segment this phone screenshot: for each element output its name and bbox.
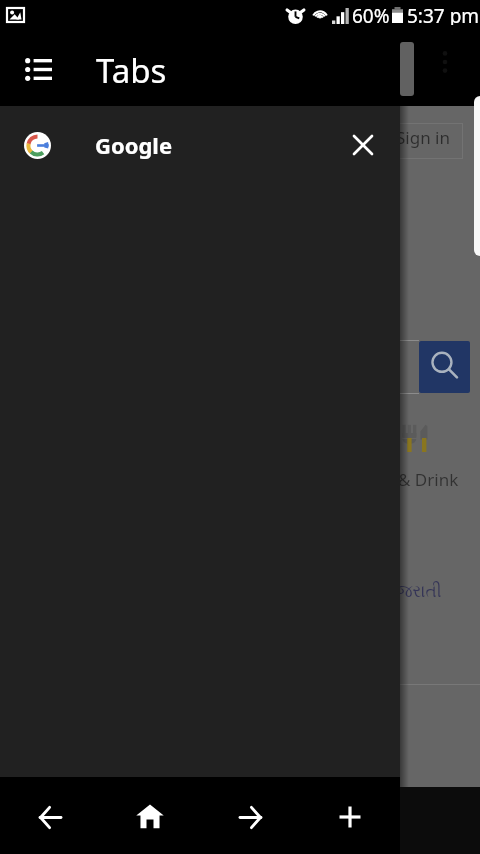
staticText: 5:37 pm (407, 3, 480, 25)
button[interactable]: Close tab (339, 121, 387, 169)
staticText: Tabs (96, 48, 167, 93)
staticText: Google (95, 130, 173, 160)
button[interactable]: Google (0, 106, 400, 184)
staticText: ગુજરાતી (384, 583, 442, 600)
button[interactable]: Tab list (13, 44, 63, 94)
staticText: 60% (352, 3, 390, 25)
button[interactable]: Back (16, 777, 84, 854)
staticText: Sign in (396, 126, 450, 149)
button[interactable] (396, 123, 463, 159)
button[interactable]: Search (419, 341, 470, 393)
staticText: & Drink (398, 468, 459, 491)
button[interactable]: Home (116, 777, 184, 854)
button[interactable]: Forward (216, 777, 284, 854)
button[interactable]: New tab (316, 777, 384, 854)
